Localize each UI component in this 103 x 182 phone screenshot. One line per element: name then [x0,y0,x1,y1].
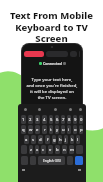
button[interactable]: g [52,135,56,144]
staticText: Text From Mobile Keyboard to TV Screen [3,9,100,45]
button[interactable]: u [61,125,65,134]
button[interactable]: m [69,145,74,154]
button[interactable]: z [29,145,33,154]
staticText: n [63,147,66,153]
staticText: l [77,137,79,143]
button[interactable]: Keyboard tool [76,106,84,113]
button[interactable]: Switch keyboard [52,167,84,173]
button[interactable]: o [73,125,77,134]
staticText: b [56,147,59,153]
button[interactable]: x [35,145,39,154]
button[interactable]: h [58,135,62,144]
staticText: m [70,147,74,153]
button[interactable]: j [64,135,68,144]
staticText: Type your text here, and once you're fin… [26,77,78,101]
button[interactable]: Keyboard tool [64,106,76,113]
staticText: z [30,147,32,153]
staticText: Connected [43,61,62,66]
button[interactable]: Devices [46,51,68,57]
button[interactable]: 7 [61,115,65,124]
staticText: k [71,137,74,143]
button[interactable]: f [45,135,50,144]
staticText: g [53,137,56,143]
button[interactable]: More [70,51,77,57]
button[interactable]: 6 [55,115,59,124]
staticText: e [36,127,39,133]
button[interactable]: 3 [35,115,40,124]
button[interactable]: Shift [21,145,27,154]
staticText: a [25,137,28,143]
button[interactable]: Keyboard tool [20,106,31,113]
staticText: p [80,127,83,133]
button[interactable]: w [28,125,33,134]
button[interactable]: t [49,125,53,134]
staticText: o [74,127,77,133]
button[interactable]: English (US) [38,156,65,165]
button[interactable]: l [76,135,80,144]
staticText: 7 [62,117,65,123]
staticText: 3 [36,117,39,123]
staticText: h [59,137,62,143]
button[interactable]: Comma [30,156,36,165]
staticText: 1 [22,117,25,123]
staticText: 8 [68,117,71,123]
button[interactable]: r [42,125,47,134]
staticText: 2 [29,117,32,123]
staticText: English (US) [43,159,61,163]
button[interactable]: Keyboard tool [47,106,64,113]
staticText: j [65,137,67,143]
button[interactable]: k [70,135,74,144]
staticText: y [56,127,59,133]
staticText: 5 [50,117,53,123]
button[interactable]: v [48,145,53,154]
button[interactable]: Send [75,156,83,165]
button[interactable]: e [35,125,40,134]
button[interactable]: 0 [79,115,83,124]
staticText: d [39,137,42,143]
button[interactable]: q [21,125,26,134]
staticText: 0 [80,117,83,123]
staticText: r [44,127,46,133]
button[interactable]: Period [67,156,73,165]
button[interactable]: Keyboard tool [31,106,47,113]
button[interactable]: 5 [49,115,53,124]
staticText: 6 [56,117,59,123]
staticText: i [68,127,70,133]
button[interactable]: a [24,135,29,144]
button[interactable]: 8 [67,115,71,124]
button[interactable]: s [31,135,36,144]
button[interactable]: Recording [24,51,44,57]
staticText: u [62,127,65,133]
button[interactable]: p [79,125,83,134]
button[interactable]: d [38,135,43,144]
staticText: x [36,147,39,153]
staticText: s [32,137,35,143]
button[interactable]: Backspace [76,145,83,154]
staticText: 9 [74,117,77,123]
button[interactable]: c [41,145,46,154]
button[interactable]: i [67,125,71,134]
staticText: w [29,127,33,133]
staticText: c [42,147,45,153]
button[interactable]: Hide keyboard [20,167,52,173]
button[interactable]: 9 [73,115,77,124]
staticText: v [49,147,52,153]
staticText: q [22,127,25,133]
staticText: f [47,137,49,143]
button[interactable]: 1 [21,115,26,124]
staticText: 4 [43,117,46,123]
staticText: t [50,127,52,133]
button[interactable]: n [62,145,67,154]
button[interactable]: y [55,125,59,134]
button[interactable]: Symbols [21,156,28,165]
button[interactable]: b [55,145,60,154]
button[interactable]: 2 [28,115,33,124]
button[interactable]: 4 [42,115,47,124]
